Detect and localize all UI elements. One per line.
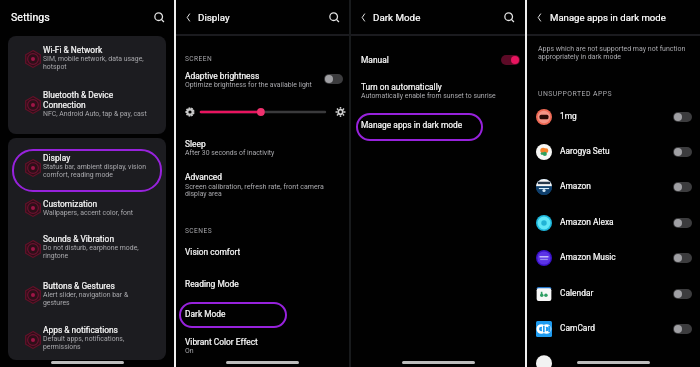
staticText: Manage apps in dark mode xyxy=(550,12,666,23)
staticText: Amazon xyxy=(560,181,591,191)
staticText: gestures xyxy=(43,299,70,307)
staticText: 1mg xyxy=(560,111,577,121)
button[interactable]: Amazon xyxy=(527,169,700,204)
staticText: Settings xyxy=(11,11,50,23)
staticText: permissions xyxy=(43,343,81,351)
button[interactable]: Brightness xyxy=(176,106,349,118)
button[interactable] xyxy=(23,239,43,259)
staticText: Wallpapers, accent color, font xyxy=(43,209,134,217)
staticText: NFC, Android Auto, tap & pay, cast xyxy=(43,110,147,118)
staticText: Sleep xyxy=(185,139,206,149)
staticText: Buttons & Gestures xyxy=(43,281,115,291)
staticText: UNSUPPORTED APPS xyxy=(538,90,613,98)
button[interactable] xyxy=(23,330,43,350)
staticText: hotspot xyxy=(43,63,67,71)
staticText: Advanced xyxy=(185,172,222,182)
button[interactable] xyxy=(23,198,43,218)
staticText: SCREEN xyxy=(185,55,213,63)
button[interactable]: Toggle xyxy=(673,324,692,334)
button[interactable]: Reading Mode xyxy=(185,279,239,289)
button[interactable]: Amazon Alexa xyxy=(527,205,700,240)
button[interactable] xyxy=(23,95,43,115)
button[interactable]: Toggle xyxy=(673,218,692,228)
staticText: Turn on automatically xyxy=(361,82,442,92)
staticText: Calendar xyxy=(560,288,594,298)
staticText: Do not disturb, earphone mode, xyxy=(43,244,139,252)
button[interactable]: Manual xyxy=(351,52,525,68)
button[interactable]: Back xyxy=(357,11,370,24)
staticText: Apps which are not supported may not fun… xyxy=(538,45,686,53)
staticText: Connection xyxy=(43,100,86,110)
staticText: comfort, reading mode xyxy=(43,171,113,179)
button[interactable]: Sleep xyxy=(185,139,275,157)
staticText: Amazon Alexa xyxy=(560,217,614,227)
button[interactable]: Toggle xyxy=(673,253,692,263)
staticText: Default apps, notifications, xyxy=(43,335,125,343)
staticText: Sounds & Vibration xyxy=(43,234,115,244)
button[interactable]: Toggle xyxy=(673,147,692,157)
staticText: Customization xyxy=(43,199,98,209)
button[interactable]: Back xyxy=(182,11,195,24)
staticText: Screen calibration, refresh rate, front … xyxy=(185,182,324,190)
staticText: appropriately in dark mode xyxy=(538,53,622,61)
staticText: Wi-Fi & Network xyxy=(43,45,103,55)
staticText: Alert slider, navigation bar & xyxy=(43,291,129,299)
button[interactable]: Toggle xyxy=(673,182,692,192)
staticText: After 30 seconds of inactivity xyxy=(185,149,275,157)
staticText: Optimize brightness for the available li… xyxy=(185,81,312,89)
staticText: SIM, mobile network, data usage, xyxy=(43,55,144,63)
button[interactable]: Toggle xyxy=(501,55,520,65)
button[interactable]: 1mg xyxy=(527,99,700,134)
staticText: Manual xyxy=(361,55,389,65)
button[interactable]: Vision comfort xyxy=(185,247,241,257)
button[interactable]: Aarogya Setu xyxy=(527,134,700,169)
button[interactable]: Search xyxy=(152,10,167,25)
button[interactable]: Toggle xyxy=(673,289,692,299)
button[interactable]: Calendar xyxy=(527,276,700,311)
button[interactable]: Search xyxy=(502,10,517,25)
button[interactable]: Adaptive brightness xyxy=(176,69,349,91)
staticText: SCENES xyxy=(185,227,213,235)
button[interactable]: Toggle xyxy=(324,74,343,84)
button[interactable]: Toggle xyxy=(673,112,692,122)
button[interactable] xyxy=(23,158,43,178)
staticText: Status bar, ambient display, vision xyxy=(43,163,147,171)
staticText: Adaptive brightness xyxy=(185,71,260,81)
button[interactable]: Search xyxy=(327,10,342,25)
staticText: Aarogya Setu xyxy=(560,146,610,156)
button[interactable]: Manage apps in dark mode xyxy=(361,120,463,130)
staticText: Display xyxy=(198,12,230,23)
staticText: Display xyxy=(43,153,71,163)
button[interactable] xyxy=(23,285,43,305)
staticText: CamCard xyxy=(560,323,595,333)
staticText: display area xyxy=(185,190,222,198)
staticText: Apps & notifications xyxy=(43,325,118,335)
staticText: Bluetooth & Device xyxy=(43,90,114,100)
staticText: Amazon Music xyxy=(560,252,616,262)
button[interactable]: Turn on automatically xyxy=(361,82,496,100)
button[interactable] xyxy=(23,49,43,69)
staticText: Vibrant Color Effect xyxy=(185,337,258,347)
button[interactable]: CamCard xyxy=(527,311,700,346)
button[interactable]: Dark Mode xyxy=(185,309,226,319)
button[interactable]: Amazon Music xyxy=(527,240,700,275)
button[interactable]: Back xyxy=(533,11,546,24)
button[interactable]: Advanced xyxy=(185,172,324,198)
staticText: Automatically enable from sunset to sunr… xyxy=(361,92,496,100)
staticText: ringtone xyxy=(43,252,69,260)
button[interactable]: Vibrant Color Effect xyxy=(185,337,258,355)
staticText: On xyxy=(185,347,194,355)
staticText: Dark Mode xyxy=(373,12,421,23)
